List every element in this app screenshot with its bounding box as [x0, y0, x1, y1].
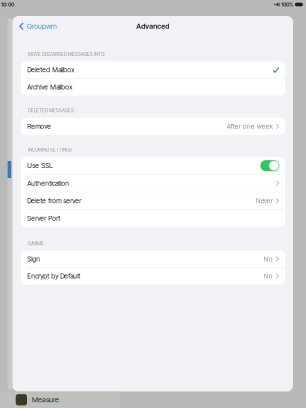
button[interactable]: Authentication: [21, 175, 285, 192]
staticText: Use SSL: [27, 162, 52, 170]
button[interactable]: Groupwm: [12, 19, 61, 33]
staticText: Delete from server: [27, 197, 81, 205]
button[interactable]: Sign: [21, 251, 285, 267]
staticText: Archive Mailbox: [27, 83, 72, 91]
button[interactable]: Measure: [0, 392, 120, 408]
button[interactable]: Delete from server: [21, 192, 285, 209]
button[interactable]: Deleted Mailbox: [21, 62, 285, 78]
staticText: Measure: [32, 395, 59, 404]
staticText: Never: [256, 197, 273, 205]
staticText: Remove: [27, 122, 51, 130]
button[interactable]: Remove: [21, 118, 285, 135]
staticText: DELETED MESSAGES: [28, 108, 74, 113]
staticText: Sign: [27, 255, 40, 263]
button[interactable]: Use SSL: [21, 157, 285, 174]
button[interactable]: Encrypt by Default: [21, 268, 285, 284]
staticText: Authentication: [27, 179, 69, 187]
button[interactable]: Archive Mailbox: [21, 79, 285, 95]
staticText: S/MIME: [28, 241, 44, 246]
staticText: Advanced: [136, 22, 169, 30]
staticText: Groupwm: [27, 22, 57, 30]
staticText: 10:00: [1, 1, 14, 8]
staticText: Encrypt by Default: [27, 272, 80, 280]
staticText: No: [264, 255, 273, 263]
staticText: 100%: [281, 1, 293, 8]
staticText: After one week: [227, 122, 273, 130]
button[interactable]: Server Port: [21, 210, 285, 227]
staticText: Deleted Mailbox: [27, 66, 74, 74]
staticText: No: [264, 272, 273, 280]
staticText: MOVE DISCARDED MESSAGES INTO:: [28, 52, 105, 57]
staticText: INCOMING SETTINGS: [28, 147, 72, 153]
staticText: Server Port: [27, 214, 60, 222]
